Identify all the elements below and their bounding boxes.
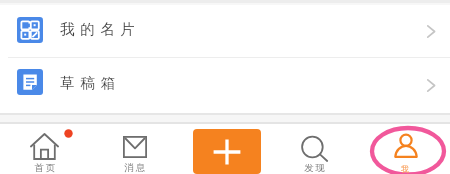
button[interactable]: Add — [193, 129, 261, 174]
button[interactable]: 首页 — [0, 124, 90, 174]
button[interactable]: 我的名片 — [0, 5, 450, 57]
button[interactable]: 我 — [360, 124, 450, 174]
button[interactable]: 发现 — [270, 124, 360, 174]
staticText: 消息 — [124, 162, 147, 174]
staticText: 草稿箱 — [60, 74, 121, 92]
button[interactable]: 草稿箱 — [0, 58, 450, 112]
staticText: 我 — [401, 164, 409, 174]
staticText: 发现 — [304, 162, 327, 174]
button[interactable]: 消息 — [90, 124, 180, 174]
staticText: 我的名片 — [60, 20, 141, 38]
staticText: 首页 — [34, 162, 57, 174]
